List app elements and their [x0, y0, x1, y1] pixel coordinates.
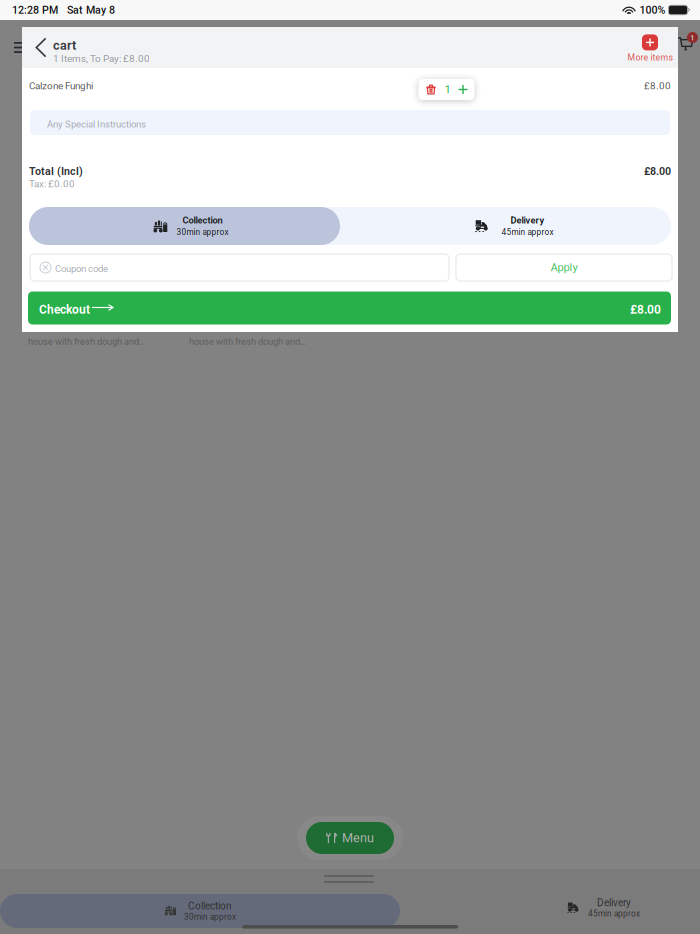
staticText: Delivery — [510, 215, 544, 226]
staticText: £8.00 — [644, 80, 671, 92]
button[interactable]: More items — [620, 28, 680, 69]
staticText: Calzone Funghi — [29, 80, 93, 92]
button[interactable]: Add item — [458, 85, 467, 94]
staticText: £8.00 — [644, 165, 671, 177]
staticText: 45min approx — [588, 909, 640, 918]
staticText: Menu — [342, 831, 374, 845]
staticText: 1 — [444, 83, 450, 96]
button[interactable]: Menu — [306, 822, 394, 854]
button[interactable]: Back — [27, 27, 55, 68]
staticText: Delivery — [597, 897, 631, 909]
staticText: 12:28 PM — [12, 4, 58, 16]
staticText: Tax: £0.00 — [29, 178, 75, 190]
staticText: cart — [53, 38, 76, 53]
staticText: Coupon code — [55, 263, 108, 274]
button[interactable]: Delivery — [348, 207, 679, 245]
staticText: Collection — [188, 900, 232, 912]
staticText: Checkout — [39, 302, 90, 317]
staticText: 1 Items, To Pay: £8.00 — [53, 53, 150, 64]
staticText: Sat May 8 — [67, 4, 115, 16]
staticText: 30min approx — [184, 912, 236, 922]
staticText: house with fresh dough and… — [189, 336, 306, 347]
staticText: 1 — [690, 33, 695, 42]
staticText: Any Special Instructions — [47, 118, 146, 130]
staticText: Apply — [550, 261, 577, 274]
staticText: Total (Incl) — [29, 165, 83, 177]
staticText: house with fresh dough and… — [28, 336, 145, 347]
button[interactable]: Checkout — [28, 291, 671, 324]
staticText: £8.00 — [630, 302, 661, 317]
staticText: 30min approx — [176, 227, 228, 237]
button[interactable]: Remove item — [425, 84, 436, 95]
button[interactable]: Collection — [35, 207, 346, 245]
staticText: More items — [627, 52, 672, 63]
staticText: Collection — [182, 215, 222, 226]
staticText: 45min approx — [501, 227, 553, 237]
staticText: 100% — [639, 4, 665, 16]
button[interactable]: Apply — [456, 254, 672, 281]
